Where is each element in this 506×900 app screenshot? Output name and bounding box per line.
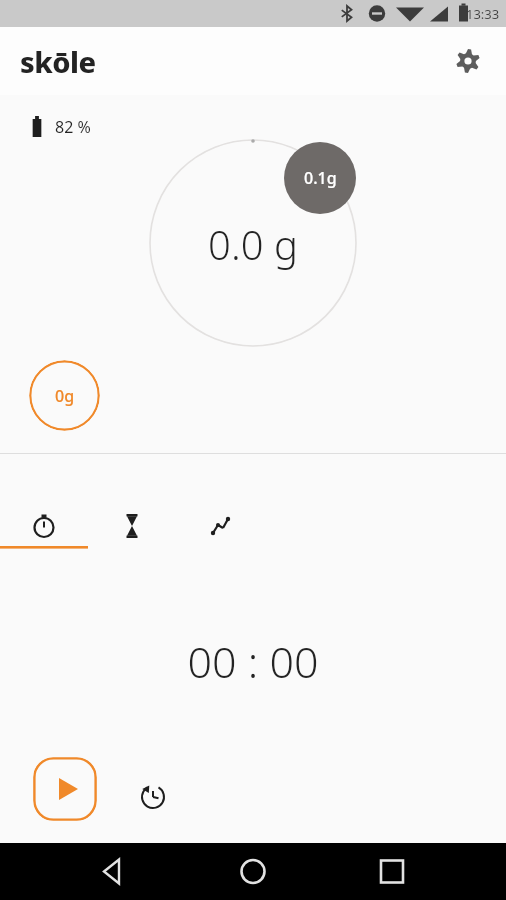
staticText: skōle (20, 42, 96, 81)
button[interactable]: Timer (88, 454, 176, 550)
staticText: 82 % (55, 116, 91, 138)
staticText: 00 : 00 (187, 632, 319, 691)
button[interactable]: Settings (446, 39, 490, 83)
staticText: 0g (55, 385, 75, 407)
button[interactable]: History (131, 775, 175, 819)
button[interactable]: 0g (29, 360, 100, 431)
staticText: 0.0 g (208, 217, 298, 271)
button[interactable]: Stopwatch (0, 454, 88, 550)
staticText: 13:33 (466, 5, 500, 23)
button[interactable]: Chart (176, 454, 264, 550)
staticText: 0.1g (304, 167, 337, 189)
button[interactable]: 0.1g (284, 142, 356, 214)
button[interactable]: Start (33, 757, 97, 821)
